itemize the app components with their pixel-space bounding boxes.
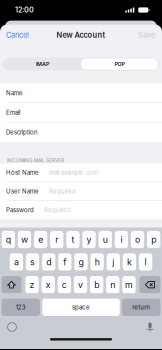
staticText: x xyxy=(46,279,51,290)
button[interactable]: Cancel xyxy=(0,27,33,44)
button[interactable]: a xyxy=(10,253,23,271)
button[interactable]: v xyxy=(74,276,87,293)
staticText: o xyxy=(135,234,140,245)
button[interactable]: m xyxy=(122,276,136,293)
staticText: a xyxy=(14,257,19,267)
staticText: IMAP xyxy=(36,61,49,67)
staticText: n xyxy=(110,279,115,290)
staticText: i xyxy=(120,234,122,245)
button[interactable]: User Name xyxy=(0,182,162,200)
staticText: k xyxy=(127,257,132,267)
staticText: space xyxy=(72,304,90,311)
button[interactable]: POP xyxy=(81,57,158,71)
staticText: 12:00 xyxy=(15,6,34,14)
staticText: Host Name xyxy=(6,169,39,176)
button[interactable]: q xyxy=(2,231,15,248)
staticText: mail.example.com xyxy=(49,169,98,176)
button[interactable]: x xyxy=(42,276,55,293)
button[interactable]: g xyxy=(74,253,88,271)
button[interactable]: z xyxy=(25,276,39,293)
button[interactable]: Password xyxy=(0,201,162,219)
button[interactable]: f xyxy=(58,253,71,271)
staticText: p xyxy=(151,234,156,245)
staticText: h xyxy=(95,257,100,267)
staticText: g xyxy=(78,257,83,267)
button[interactable]: y xyxy=(82,231,96,248)
staticText: User Name xyxy=(6,188,39,195)
staticText: Name xyxy=(6,89,23,97)
button[interactable]: b xyxy=(90,276,103,293)
button[interactable]: Host Name xyxy=(0,163,162,182)
button[interactable]: c xyxy=(58,276,71,293)
staticText: q xyxy=(6,234,11,245)
staticText: return xyxy=(132,304,150,311)
button[interactable]: space xyxy=(42,299,120,316)
button[interactable]: Emoji keyboard xyxy=(0,316,24,338)
button[interactable]: w xyxy=(18,231,31,248)
button[interactable]: i xyxy=(115,231,128,248)
staticText: j xyxy=(112,257,114,267)
staticText: m xyxy=(125,279,133,290)
staticText: s xyxy=(30,257,35,267)
staticText: Email xyxy=(6,109,20,116)
button[interactable]: Dictation xyxy=(138,316,162,338)
button[interactable]: IMAP xyxy=(4,57,81,71)
button[interactable]: 123 xyxy=(1,299,40,316)
staticText: New Account xyxy=(56,31,105,40)
staticText: w xyxy=(21,234,28,245)
button[interactable]: h xyxy=(90,253,104,271)
staticText: l xyxy=(145,257,147,267)
staticText: Required xyxy=(49,188,76,195)
staticText: b xyxy=(94,279,99,290)
button[interactable]: n xyxy=(106,276,119,293)
button[interactable]: p xyxy=(147,231,160,248)
staticText: z xyxy=(30,279,35,290)
button[interactable]: Save xyxy=(134,27,162,44)
staticText: 123 xyxy=(16,304,26,311)
staticText: e xyxy=(38,234,43,245)
button[interactable]: d xyxy=(42,253,55,271)
staticText: Required xyxy=(44,206,71,214)
staticText: v xyxy=(78,279,83,290)
button[interactable]: k xyxy=(123,253,136,271)
staticText: y xyxy=(87,234,92,245)
staticText: Save xyxy=(138,31,155,40)
button[interactable]: j xyxy=(107,253,120,271)
staticText: u xyxy=(103,234,108,245)
button[interactable]: u xyxy=(99,231,112,248)
button[interactable]: return xyxy=(122,299,160,316)
button[interactable]: Name xyxy=(0,83,162,102)
button[interactable]: l xyxy=(139,253,152,271)
staticText: POP xyxy=(114,61,124,67)
button[interactable]: Delete xyxy=(139,276,160,293)
button[interactable]: t xyxy=(66,231,80,248)
staticText: t xyxy=(71,234,74,245)
staticText: c xyxy=(62,279,67,290)
staticText: f xyxy=(63,257,66,267)
staticText: Description xyxy=(6,129,38,136)
staticText: Password xyxy=(6,206,34,214)
button[interactable]: Description xyxy=(0,123,162,142)
button[interactable]: Shift xyxy=(1,276,21,293)
button[interactable]: e xyxy=(34,231,47,248)
button[interactable]: s xyxy=(26,253,39,271)
button[interactable]: Email xyxy=(0,103,162,122)
staticText: Cancel xyxy=(6,31,29,40)
staticText: r xyxy=(55,234,58,245)
button[interactable]: r xyxy=(50,231,63,248)
button[interactable]: o xyxy=(131,231,144,248)
staticText: INCOMING MAIL SERVER xyxy=(7,158,64,163)
staticText: d xyxy=(46,257,51,267)
